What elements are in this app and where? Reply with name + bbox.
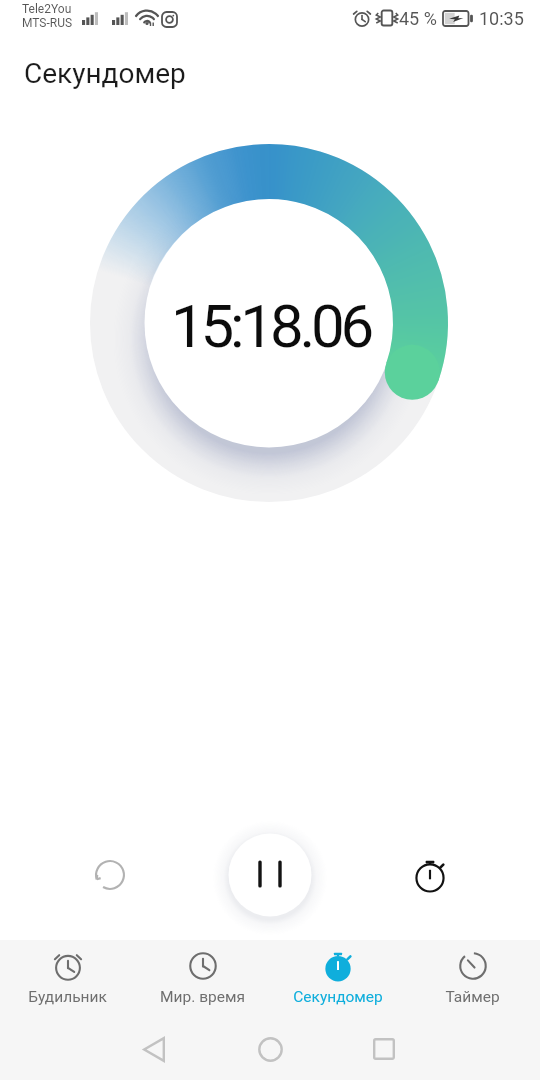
staticText: Таймер — [445, 988, 500, 1006]
button[interactable]: Мир. время — [135, 940, 270, 1018]
button[interactable]: Секундомер — [270, 940, 405, 1018]
staticText: Секундомер — [24, 57, 186, 90]
button[interactable]: Back — [106, 1018, 202, 1080]
staticText: Будильник — [28, 988, 107, 1006]
staticText: Секундомер — [293, 988, 383, 1006]
staticText: MTS-RUS — [22, 16, 73, 30]
button[interactable]: Будильник — [0, 940, 135, 1018]
staticText: Tele2You — [22, 2, 72, 16]
button[interactable]: Reset — [0, 825, 220, 925]
button[interactable]: Recents — [336, 1018, 432, 1080]
staticText: 45 % — [399, 8, 437, 29]
button[interactable]: Pause — [220, 825, 320, 925]
button[interactable]: Таймер — [405, 940, 540, 1018]
button[interactable]: Home — [222, 1018, 318, 1080]
staticText: 10:35 — [479, 8, 524, 29]
staticText: Мир. время — [160, 988, 245, 1006]
button[interactable]: Lap — [320, 825, 540, 925]
staticText: 15:18.06 — [171, 291, 371, 361]
